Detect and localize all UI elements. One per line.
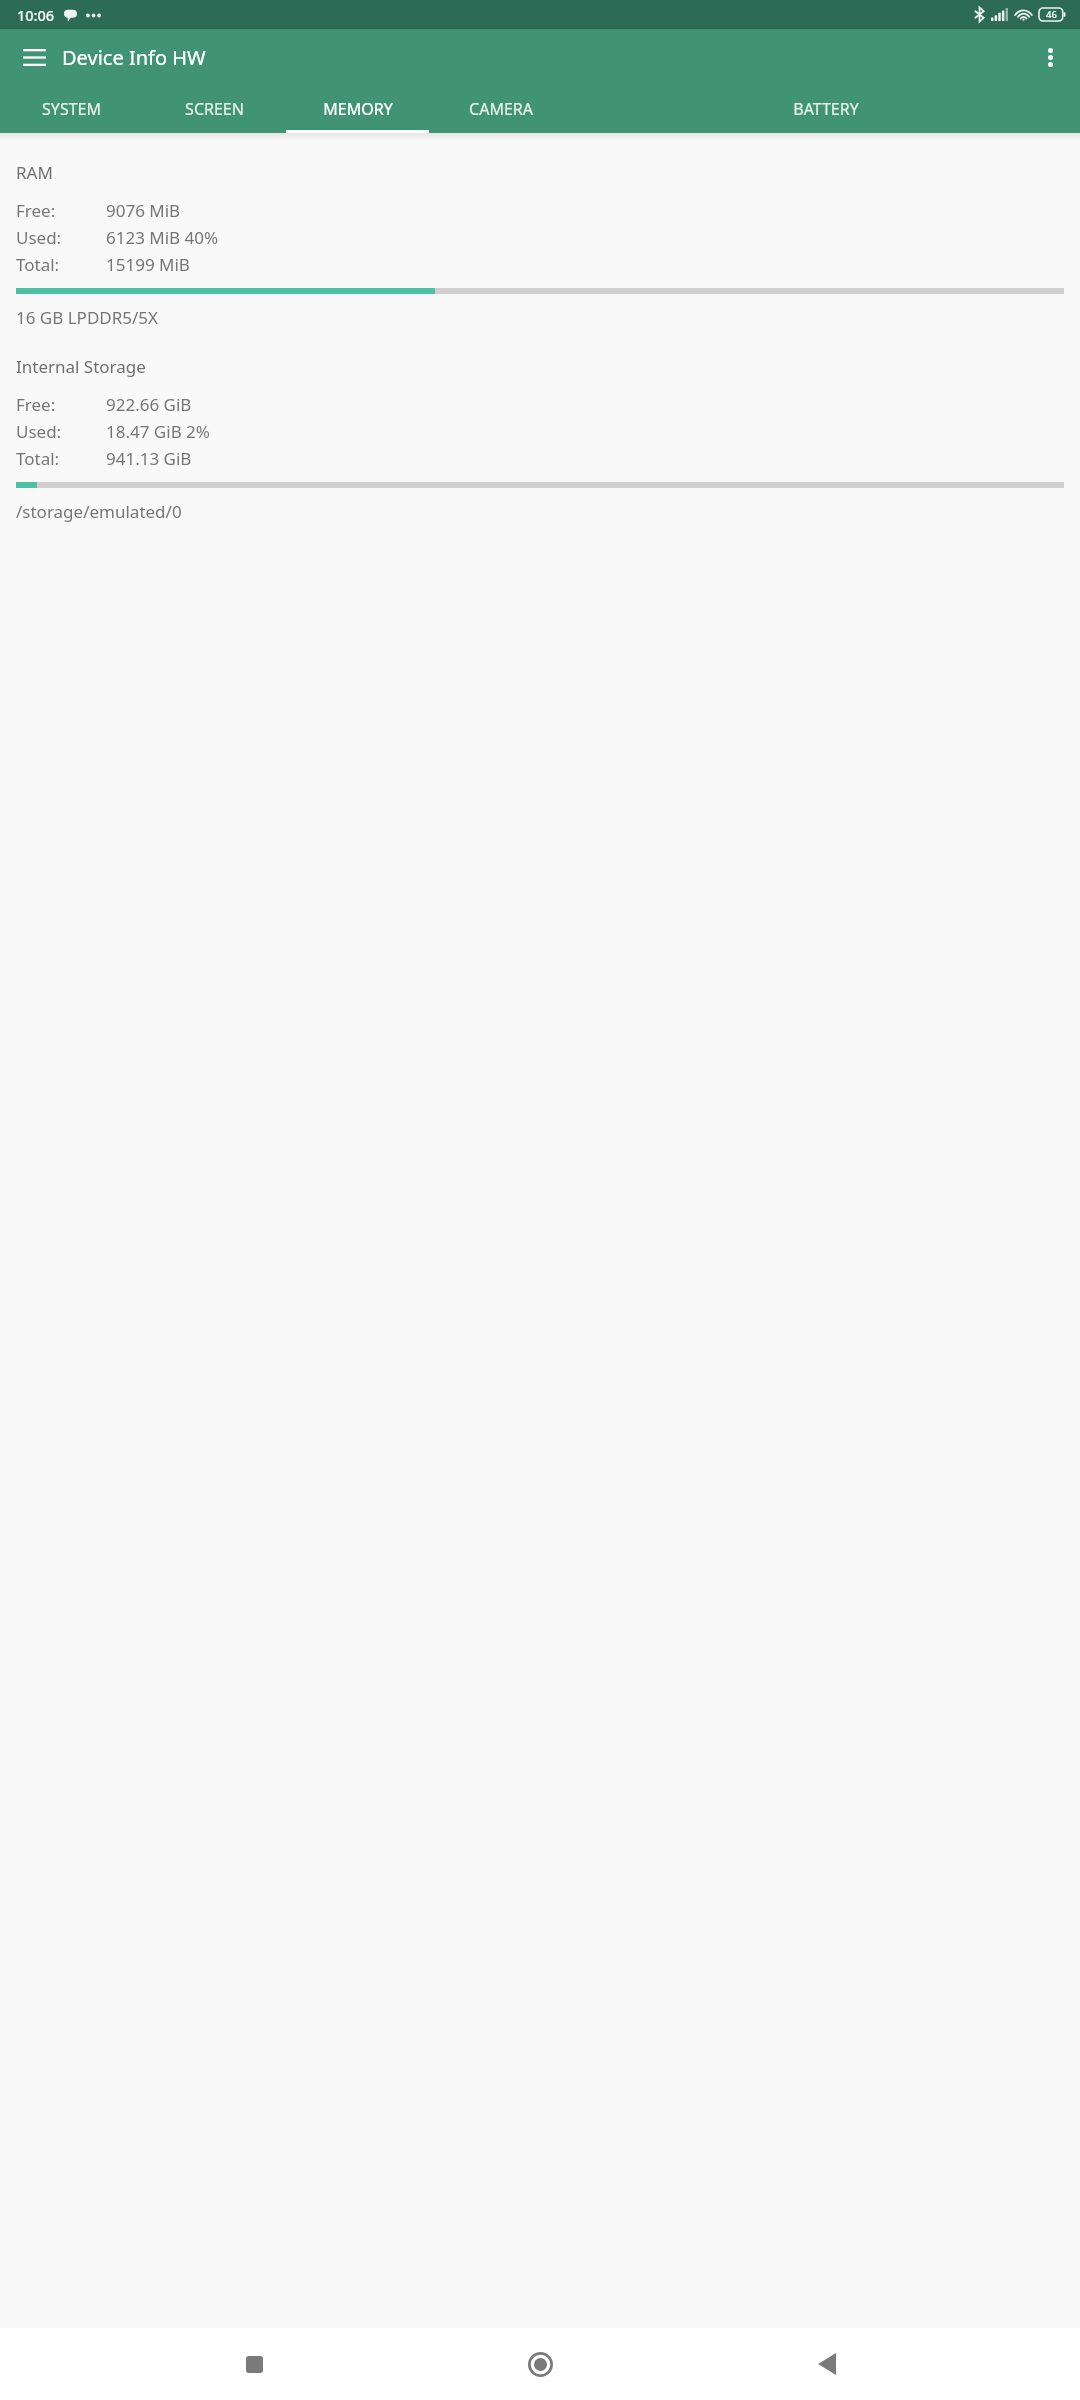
staticText: 9076 MiB [106, 199, 181, 222]
staticText: 16 GB LPDDR5/5X [16, 306, 159, 329]
staticText: BATTERY [793, 98, 859, 120]
staticText: 10:06 [17, 5, 55, 25]
staticText: 6123 MiB 40% [106, 226, 219, 249]
staticText: Total: [16, 253, 74, 276]
staticText: SYSTEM [42, 98, 101, 120]
button[interactable]: Recent apps [222, 2332, 286, 2396]
button[interactable]: BATTERY [572, 85, 1080, 133]
button[interactable]: Home [508, 2332, 572, 2396]
button[interactable]: Back [794, 2332, 858, 2396]
staticText: Used: [16, 226, 74, 249]
staticText: /storage/emulated/0 [16, 500, 182, 523]
staticText: MEMORY [323, 98, 393, 120]
staticText: RAM [16, 161, 53, 184]
button[interactable]: MEMORY [286, 85, 429, 133]
button[interactable]: CAMERA [429, 85, 572, 133]
staticText: 15199 MiB [106, 253, 190, 276]
button[interactable]: More options [1026, 33, 1074, 81]
staticText: Internal Storage [16, 355, 146, 378]
button[interactable]: Open navigation drawer [10, 33, 58, 81]
staticText: CAMERA [469, 98, 533, 120]
staticText: Device Info HW [62, 44, 206, 71]
staticText: 922.66 GiB [106, 393, 192, 416]
button[interactable]: SCREEN [143, 85, 286, 133]
staticText: Used: [16, 420, 74, 443]
staticText: 941.13 GiB [106, 447, 192, 470]
staticText: SCREEN [185, 98, 244, 120]
staticText: Free: [16, 393, 74, 416]
button[interactable]: SYSTEM [0, 85, 143, 133]
staticText: Free: [16, 199, 74, 222]
staticText: Total: [16, 447, 74, 470]
staticText: 46 [1046, 8, 1057, 21]
staticText: 18.47 GiB 2% [106, 420, 210, 443]
